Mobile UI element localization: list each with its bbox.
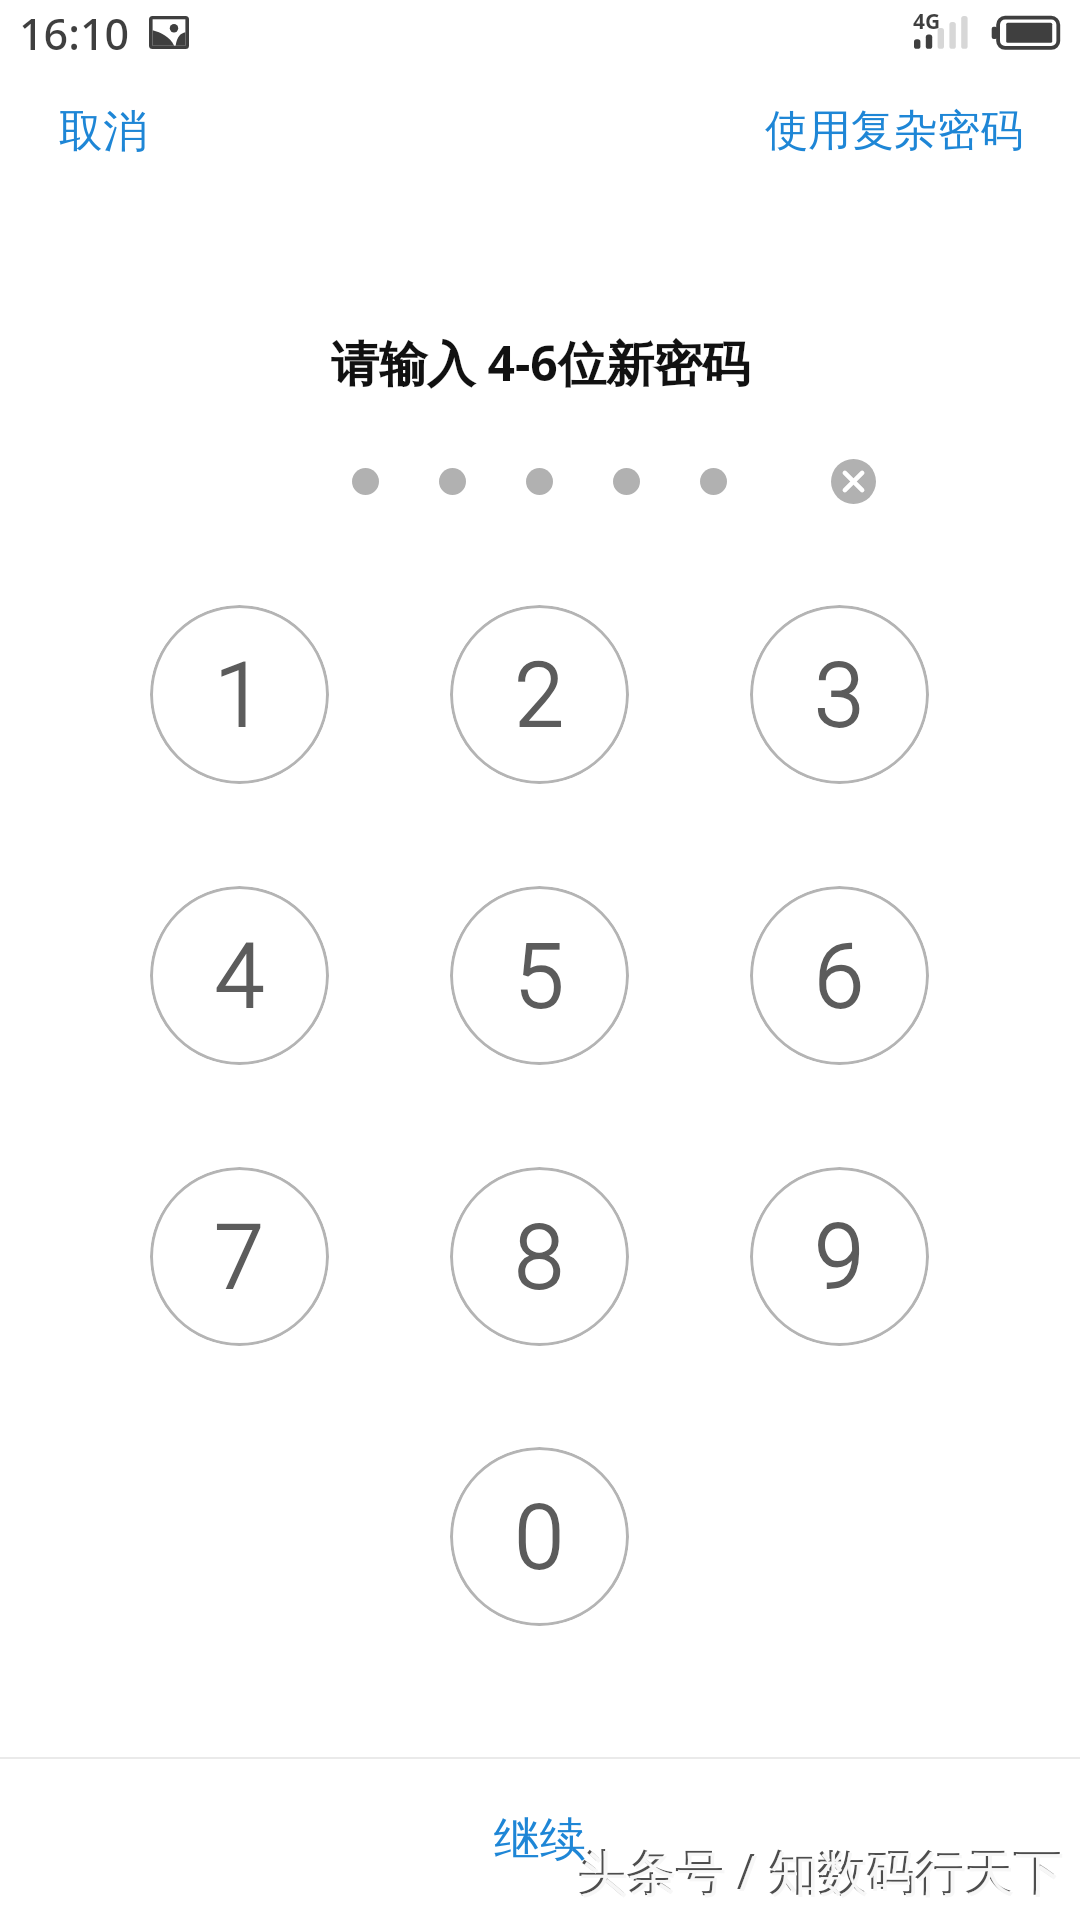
staticText: 4G — [913, 7, 941, 36]
button[interactable]: 1 — [150, 605, 329, 784]
staticText: 继续 — [494, 1811, 586, 1869]
button[interactable]: 9 — [750, 1167, 929, 1346]
staticText: 取消 — [59, 104, 147, 152]
button[interactable]: 使用复杂密码 — [706, 90, 1080, 166]
staticText: 请输入 4-6位新密码 — [331, 330, 750, 392]
button[interactable]: Delete — [831, 459, 876, 504]
button[interactable]: 继续 — [0, 1759, 1080, 1920]
button[interactable]: 7 — [150, 1167, 329, 1346]
button[interactable]: 取消 — [0, 90, 206, 166]
button[interactable]: 2 — [450, 605, 629, 784]
button[interactable]: 8 — [450, 1167, 629, 1346]
button[interactable]: 4 — [150, 886, 329, 1065]
button[interactable]: 0 — [450, 1447, 629, 1626]
staticText: 16:10 — [19, 4, 130, 63]
button[interactable]: 5 — [450, 886, 629, 1065]
staticText: 使用复杂密码 — [765, 104, 1023, 152]
button[interactable]: 3 — [750, 605, 929, 784]
button[interactable]: 6 — [750, 886, 929, 1065]
